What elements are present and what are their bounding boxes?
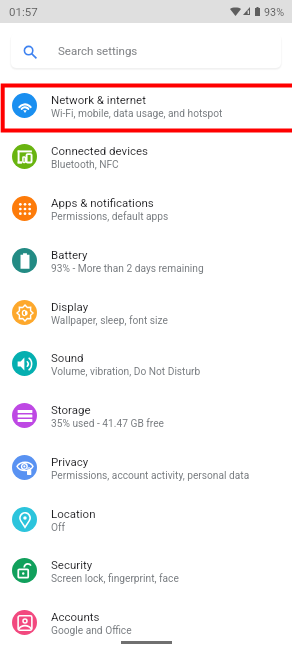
staticText: Accounts [51,610,100,623]
staticText: 01:57 [9,5,38,18]
other: Search [23,45,37,59]
staticText: Bluetooth, NFC [51,159,119,171]
button[interactable]: Sound [0,338,292,390]
button[interactable]: Display [0,287,292,339]
staticText: Privacy [51,455,89,468]
staticText: 35% used - 41.47 GB free [51,418,164,430]
button[interactable]: Network & internet [0,80,292,132]
staticText: Apps & notifications [51,196,154,209]
staticText: Security [51,558,93,571]
button[interactable]: Search [11,33,281,68]
staticText: Search settings [58,44,138,57]
staticText: Storage [51,403,91,416]
button[interactable]: Storage [0,390,292,442]
button[interactable]: Apps & notifications [0,183,292,235]
staticText: 93% - More than 2 days remaining [51,263,204,275]
button[interactable]: Privacy [0,442,292,494]
staticText: Screen lock, fingerprint, face [51,573,179,585]
staticText: Google and Office [51,625,132,637]
button[interactable]: Accounts [0,597,292,648]
staticText: Wallpaper, sleep, font size [51,315,168,327]
button[interactable]: Battery [0,235,292,287]
staticText: Wi-Fi, mobile, data usage, and hotspot [51,108,223,120]
staticText: Volume, vibration, Do Not Disturb [51,366,201,378]
staticText: 93% [264,6,285,19]
staticText: Display [51,300,89,313]
staticText: Off [51,522,66,534]
staticText: Permissions, default apps [51,211,169,223]
button[interactable]: Security [0,545,292,597]
button[interactable]: Location [0,494,292,546]
staticText: Sound [51,351,84,364]
staticText: Permissions, account activity, personal … [51,470,250,482]
staticText: Location [51,507,96,520]
staticText: Battery [51,248,88,261]
button[interactable]: Connected devices [0,131,292,183]
staticText: Connected devices [51,144,148,157]
staticText: Network & internet [51,93,146,106]
